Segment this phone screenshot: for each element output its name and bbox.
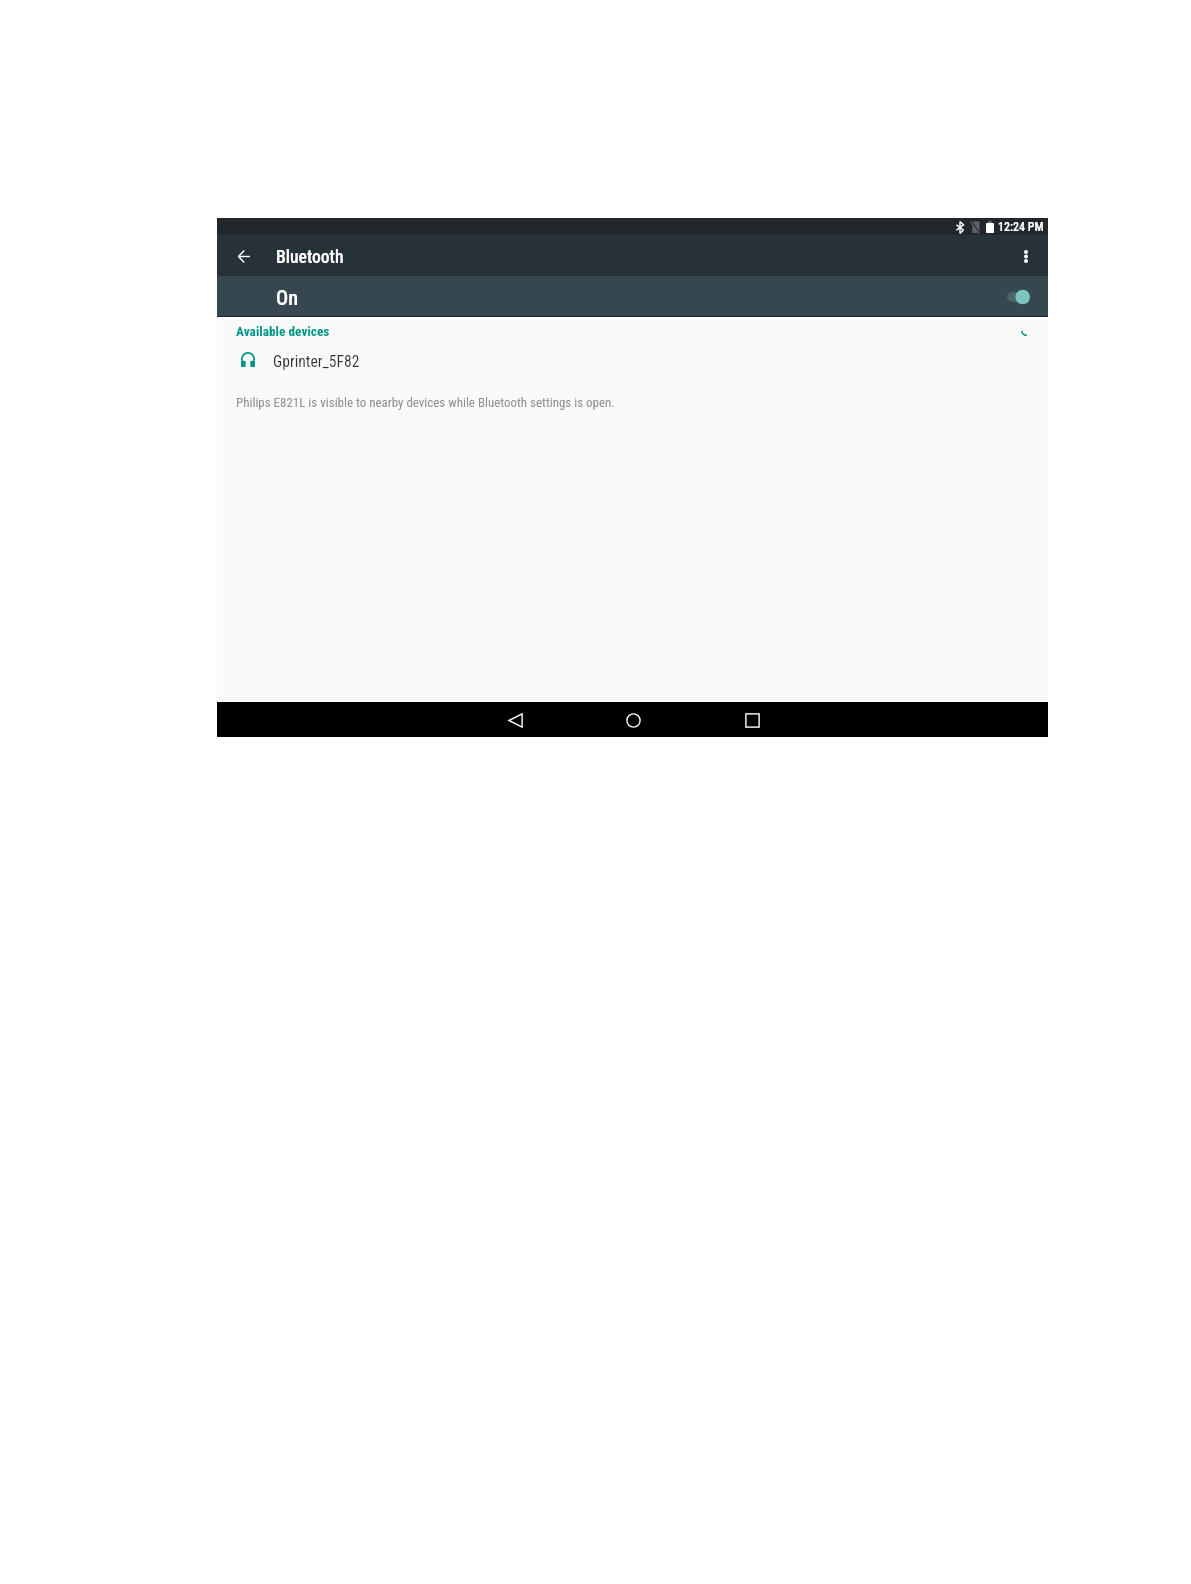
staticText: 12:24 PM [998,220,1044,234]
button[interactable]: Gprinter_5F82 [217,345,1048,375]
button[interactable]: Navigate up [228,240,260,272]
button[interactable]: On [217,276,1048,317]
staticText: Bluetooth [276,247,344,268]
button[interactable]: Back [498,703,532,737]
button[interactable]: Home [616,703,650,737]
button[interactable]: Turn Bluetooth off [1000,282,1036,312]
staticText: On [276,286,299,310]
staticText: Available devices [236,324,330,340]
staticText: Philips E821L is visible to nearby devic… [236,395,615,410]
button[interactable]: Recent apps [735,703,769,737]
button[interactable]: More options [1010,240,1042,272]
staticText: Gprinter_5F82 [273,353,360,371]
